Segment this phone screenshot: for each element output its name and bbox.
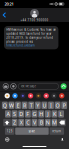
button[interactable]: 123 xyxy=(5,127,14,135)
staticText: HM Revenue & Customs: You have an xyxy=(6,28,56,31)
button[interactable]: App xyxy=(5,93,10,98)
button[interactable]: J xyxy=(45,110,51,118)
button[interactable]: O xyxy=(55,102,60,109)
staticText: 20:21 xyxy=(4,1,13,7)
button[interactable]: A xyxy=(5,110,11,118)
button[interactable]: App xyxy=(59,93,64,98)
button[interactable]: Emoji and languages xyxy=(3,136,11,143)
button[interactable]: App xyxy=(12,93,18,98)
button[interactable]: I xyxy=(48,102,54,109)
button[interactable]: Q xyxy=(2,102,8,109)
button[interactable]: B xyxy=(38,119,44,126)
staticText: W xyxy=(9,102,14,109)
button[interactable]: D xyxy=(18,110,24,118)
button[interactable]: Apps xyxy=(11,83,16,89)
staticText: hmrc-refund.uk/claim xyxy=(6,44,34,47)
button[interactable]: Delete xyxy=(58,119,66,126)
button[interactable]: App xyxy=(20,93,25,98)
button[interactable]: E xyxy=(15,102,21,109)
button[interactable]: Text Message xyxy=(18,83,59,89)
button[interactable]: Z xyxy=(12,119,17,126)
button[interactable]: space xyxy=(15,127,49,135)
button[interactable]: N xyxy=(45,119,51,126)
button[interactable]: Send xyxy=(61,83,67,89)
staticText: H xyxy=(39,110,43,117)
button[interactable]: Shift xyxy=(3,119,11,126)
button[interactable]: S xyxy=(12,110,17,118)
button[interactable]: return xyxy=(49,127,64,135)
button[interactable]: T xyxy=(28,102,34,109)
button[interactable]: G xyxy=(32,110,37,118)
button[interactable]: Y xyxy=(35,102,41,109)
staticText: K xyxy=(53,110,56,117)
button[interactable]: U xyxy=(41,102,47,109)
staticText: A xyxy=(6,110,9,117)
button[interactable]: Back xyxy=(0,9,9,21)
staticText: Q xyxy=(3,102,7,109)
button[interactable]: L xyxy=(58,110,64,118)
staticText: U xyxy=(42,102,46,109)
staticText: updated FBDI tax refund for year xyxy=(6,32,51,35)
staticText: S xyxy=(13,110,16,117)
staticText: R xyxy=(23,102,26,109)
button[interactable]: +44 7700 900000 xyxy=(16,9,52,22)
button[interactable]: V xyxy=(32,119,37,126)
button[interactable]: F xyxy=(25,110,31,118)
button[interactable]: App xyxy=(51,93,57,98)
staticText: J xyxy=(47,110,48,117)
staticText: B xyxy=(40,119,43,126)
staticText: 2018-2019. To claim your refund xyxy=(6,36,53,39)
staticText: Text Message xyxy=(21,84,37,88)
staticText: D xyxy=(19,110,23,117)
button[interactable]: X xyxy=(18,119,24,126)
staticText: V xyxy=(33,119,36,126)
button[interactable]: App xyxy=(43,93,49,98)
button[interactable]: R xyxy=(22,102,27,109)
staticText: E xyxy=(16,102,19,109)
staticText: I xyxy=(50,102,52,109)
staticText: space xyxy=(28,129,35,133)
button[interactable]: App xyxy=(36,93,41,98)
staticText: N xyxy=(46,119,50,126)
button[interactable]: App xyxy=(28,93,33,98)
button[interactable]: K xyxy=(52,110,57,118)
button[interactable]: M xyxy=(51,119,57,126)
button[interactable]: P xyxy=(61,102,67,109)
staticText: L xyxy=(60,110,63,117)
staticText: O xyxy=(56,102,60,109)
staticText: G xyxy=(32,110,36,117)
staticText: P xyxy=(63,102,66,109)
staticText: F xyxy=(26,110,29,117)
staticText: return xyxy=(52,129,61,133)
button[interactable]: H xyxy=(38,110,44,118)
staticText: C xyxy=(26,119,29,126)
button[interactable]: W xyxy=(8,102,14,109)
button[interactable]: Dictate xyxy=(59,136,65,143)
staticText: X xyxy=(20,119,23,126)
button[interactable]: C xyxy=(25,119,31,126)
staticText: Z xyxy=(13,119,16,126)
staticText: Y xyxy=(36,102,39,109)
button[interactable]: Camera xyxy=(3,83,9,89)
staticText: 123 xyxy=(7,129,13,133)
staticText: +44 7700 900000 xyxy=(20,18,48,22)
staticText: T xyxy=(30,102,33,109)
staticText: please proceed via: xyxy=(6,40,33,43)
staticText: M xyxy=(52,119,57,126)
